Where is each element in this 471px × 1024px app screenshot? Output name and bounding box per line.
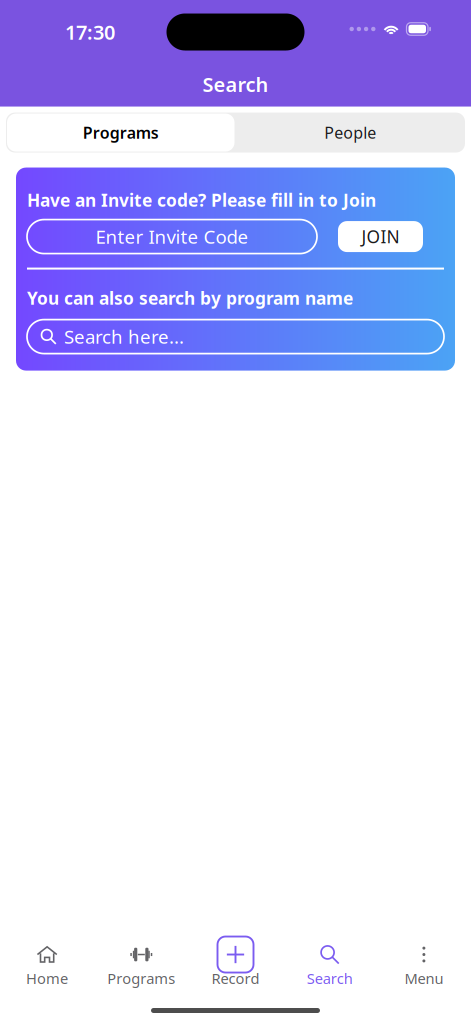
button[interactable]: Menu [377,940,471,988]
button[interactable]: Enter Invite Code [27,220,317,254]
staticText: Menu [404,968,443,988]
button[interactable]: Programs [6,113,235,153]
button[interactable]: JOIN [338,221,423,252]
staticText: Enter Invite Code [95,224,248,249]
button[interactable]: Home [0,940,94,988]
staticText: Record [211,968,259,988]
button[interactable]: Search [283,940,377,988]
staticText: Search here... [64,324,184,349]
staticText: Search [202,71,268,98]
staticText: Programs [83,122,159,143]
staticText: 17:30 [65,19,115,45]
button[interactable]: Record [188,940,283,988]
staticText: JOIN [361,225,399,248]
button[interactable]: Programs [94,940,188,988]
staticText: You can also search by program name [27,287,353,310]
staticText: Home [26,968,68,988]
button[interactable]: People [235,113,465,153]
staticText: Programs [107,968,175,988]
staticText: Have an Invite code? Please fill in to J… [27,189,376,212]
staticText: People [324,122,376,143]
staticText: Search [307,968,353,988]
